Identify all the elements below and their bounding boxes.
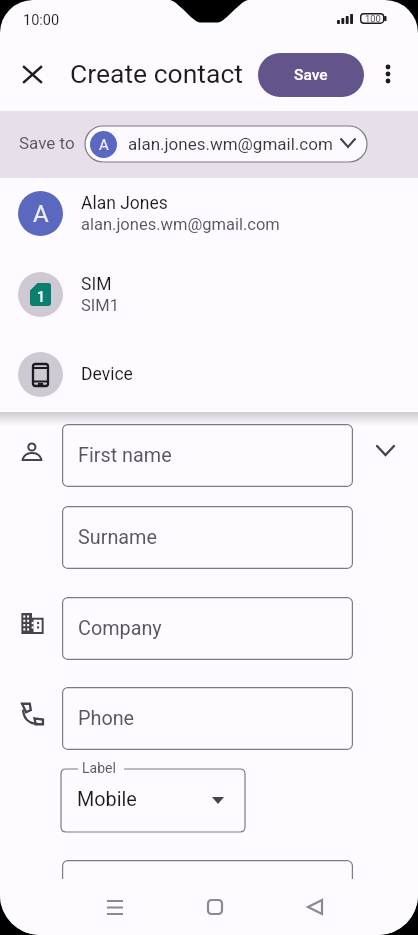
button[interactable]: Save: [258, 53, 364, 97]
staticText: Email: [78, 880, 128, 903]
staticText: A: [33, 200, 49, 228]
button[interactable]: Company: [62, 597, 353, 660]
staticText: Save: [294, 66, 328, 84]
button[interactable]: 1: [0, 260, 418, 328]
staticText: A: [99, 136, 109, 154]
button[interactable]: Label: [61, 761, 245, 832]
staticText: Label: [82, 760, 116, 776]
button[interactable]: Close: [10, 52, 54, 96]
staticText: SIM1: [81, 296, 119, 315]
button[interactable]: Recent apps: [86, 879, 143, 935]
button[interactable]: Home: [186, 879, 243, 935]
button[interactable]: Expand name fields: [363, 428, 407, 472]
staticText: Company: [78, 617, 162, 640]
button[interactable]: Surname: [62, 506, 353, 569]
staticText: Create contact: [70, 58, 243, 89]
staticText: Alan Jones: [81, 193, 168, 214]
button[interactable]: A: [85, 126, 367, 162]
staticText: Device: [81, 364, 133, 385]
button[interactable]: Back: [286, 879, 343, 935]
staticText: 1: [37, 289, 45, 305]
button[interactable]: First name: [62, 424, 353, 487]
staticText: Surname: [78, 526, 157, 549]
staticText: Mobile: [77, 788, 137, 811]
staticText: First name: [78, 444, 172, 467]
staticText: 100: [365, 13, 381, 24]
staticText: 10:00: [23, 12, 60, 29]
button[interactable]: Email: [62, 860, 353, 923]
button[interactable]: More options: [366, 52, 410, 96]
button[interactable]: Device: [0, 340, 418, 408]
staticText: Save to: [19, 133, 75, 153]
button[interactable]: A: [0, 179, 418, 247]
staticText: Phone: [78, 707, 135, 730]
staticText: alan.jones.wm@gmail.com: [128, 134, 333, 154]
staticText: SIM: [81, 274, 112, 295]
button[interactable]: Phone: [62, 687, 353, 750]
staticText: alan.jones.wm@gmail.com: [81, 215, 280, 234]
